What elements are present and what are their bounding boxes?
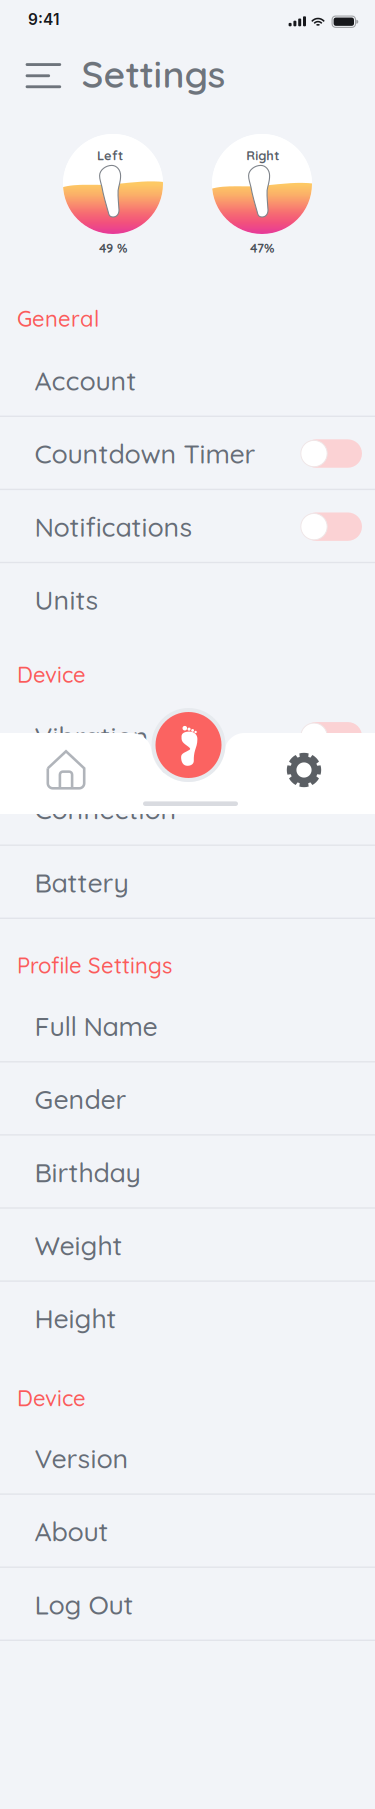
button[interactable]: Gender xyxy=(0,1062,375,1136)
staticText: 49 % xyxy=(99,240,127,256)
staticText: Device xyxy=(17,661,86,688)
button[interactable]: About xyxy=(0,1495,375,1568)
button[interactable]: Weight xyxy=(0,1209,375,1282)
button[interactable]: Menu xyxy=(26,63,74,107)
button[interactable]: Account xyxy=(0,344,375,417)
button[interactable]: Battery xyxy=(0,846,375,919)
staticText: Gender xyxy=(35,1082,127,1116)
button[interactable]: Version xyxy=(0,1422,375,1495)
staticText: Countdown Timer xyxy=(35,437,256,470)
staticText: Full Name xyxy=(35,1009,158,1043)
staticText: Log Out xyxy=(35,1588,134,1621)
staticText: Weight xyxy=(35,1229,123,1262)
staticText: Units xyxy=(35,583,99,616)
staticText: Device xyxy=(17,1384,86,1412)
staticText: General xyxy=(17,305,99,332)
button[interactable]: Birthday xyxy=(0,1136,375,1209)
staticText: About xyxy=(35,1515,109,1548)
staticText: Height xyxy=(35,1302,117,1335)
button[interactable]: Height xyxy=(0,1282,375,1355)
staticText: Battery xyxy=(35,866,129,899)
staticText: Birthday xyxy=(35,1155,141,1189)
button[interactable]: Track steps xyxy=(151,708,225,782)
staticText: Connection xyxy=(35,793,177,826)
staticText: Version xyxy=(35,1442,129,1475)
staticText: Account xyxy=(35,364,137,397)
button[interactable]: Notifications xyxy=(0,490,375,563)
staticText: 9:41 xyxy=(28,10,60,29)
staticText: Right xyxy=(246,147,279,163)
button[interactable]: Vibration xyxy=(0,700,375,773)
button[interactable]: Countdown Timer xyxy=(0,417,375,490)
button[interactable]: Home xyxy=(27,739,105,801)
staticText: Left xyxy=(97,147,123,163)
staticText: 47% xyxy=(250,240,274,256)
button[interactable]: Settings xyxy=(265,739,343,801)
staticText: Vibration xyxy=(35,720,149,753)
button[interactable]: Units xyxy=(0,563,375,636)
button[interactable]: Log Out xyxy=(0,1568,375,1641)
staticText: Profile Settings xyxy=(17,952,172,979)
button[interactable]: Full Name xyxy=(0,989,375,1062)
staticText: Notifications xyxy=(35,510,193,543)
staticText: Settings xyxy=(81,50,225,97)
button[interactable]: Connection xyxy=(0,773,375,846)
